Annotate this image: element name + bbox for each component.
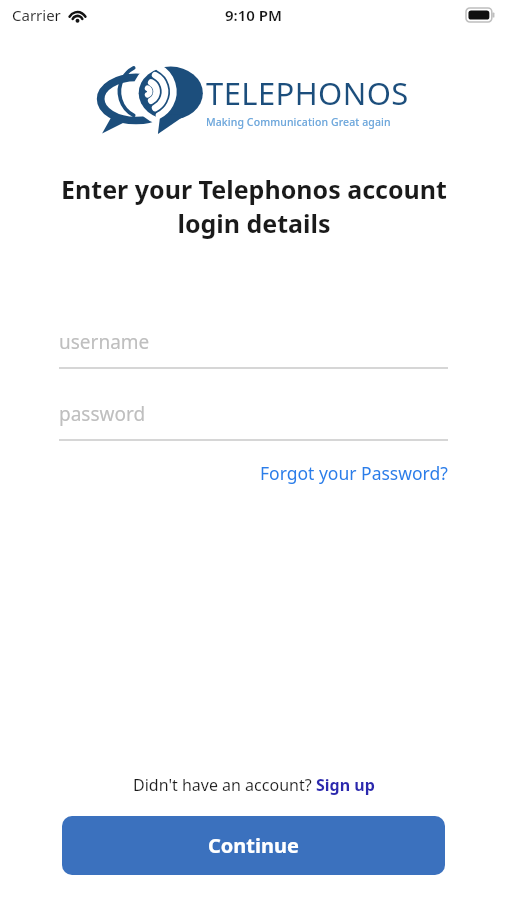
staticText: Carrier — [12, 5, 61, 25]
staticText: Didn't have an account? — [133, 774, 316, 796]
staticText: Enter your Telephonos account login deta… — [61, 172, 447, 240]
staticText: Continue — [208, 832, 299, 859]
staticText: Forgot your Password? — [260, 461, 448, 485]
button[interactable]: password — [59, 397, 448, 441]
staticText: Sign up — [316, 774, 375, 796]
staticText: password — [59, 401, 146, 427]
staticText: TELEPHONOS — [206, 72, 409, 114]
button[interactable]: Forgot your Password? — [260, 457, 448, 489]
button[interactable]: Sign up — [316, 774, 375, 796]
staticText: 9:10 PM — [225, 5, 282, 25]
button[interactable]: username — [59, 325, 448, 369]
button[interactable]: Continue — [62, 816, 445, 875]
staticText: Making Communication Great again — [206, 115, 391, 129]
staticText: username — [59, 329, 150, 355]
